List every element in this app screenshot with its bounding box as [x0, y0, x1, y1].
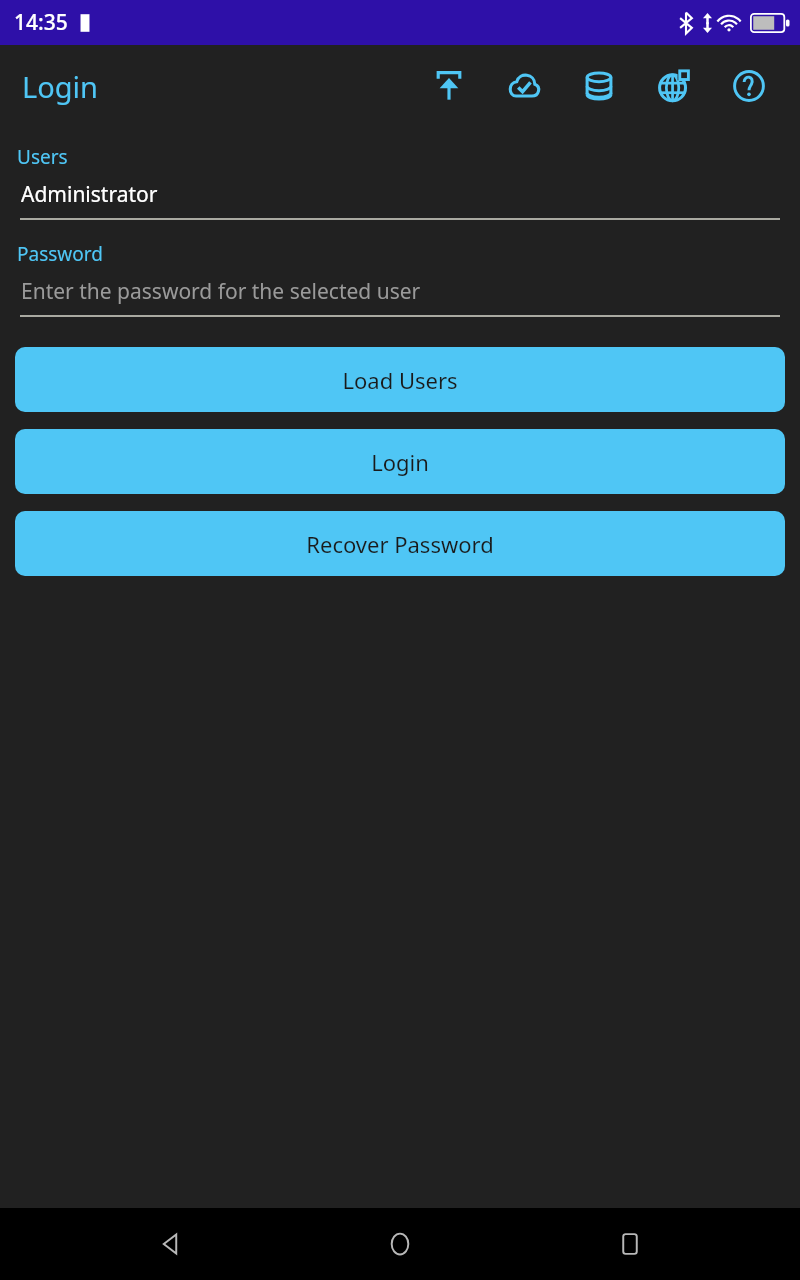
button[interactable]: Administrator: [0, 180, 800, 220]
button[interactable]: Upload: [411, 56, 486, 116]
button[interactable]: Cloud sync: [486, 56, 561, 116]
button[interactable]: Recover Password: [15, 511, 785, 576]
staticText: Enter the password for the selected user: [21, 277, 421, 306]
button[interactable]: Back: [110, 1208, 230, 1280]
staticText: Recover Password: [306, 529, 494, 559]
button[interactable]: Login: [15, 429, 785, 494]
button[interactable]: Help: [711, 56, 786, 116]
button[interactable]: Recent apps: [570, 1208, 690, 1280]
staticText: Users: [17, 144, 68, 170]
staticText: Administrator: [21, 180, 158, 209]
staticText: Login: [371, 447, 429, 477]
button[interactable]: Database: [561, 56, 636, 116]
button[interactable]: Enter the password for the selected user: [0, 277, 800, 317]
staticText: Password: [17, 241, 103, 267]
staticText: Load Users: [342, 365, 458, 395]
button[interactable]: Home: [340, 1208, 460, 1280]
button[interactable]: Load Users: [15, 347, 785, 412]
button[interactable]: Server settings: [636, 56, 711, 116]
staticText: Login: [22, 67, 98, 106]
staticText: 14:35: [14, 8, 68, 37]
